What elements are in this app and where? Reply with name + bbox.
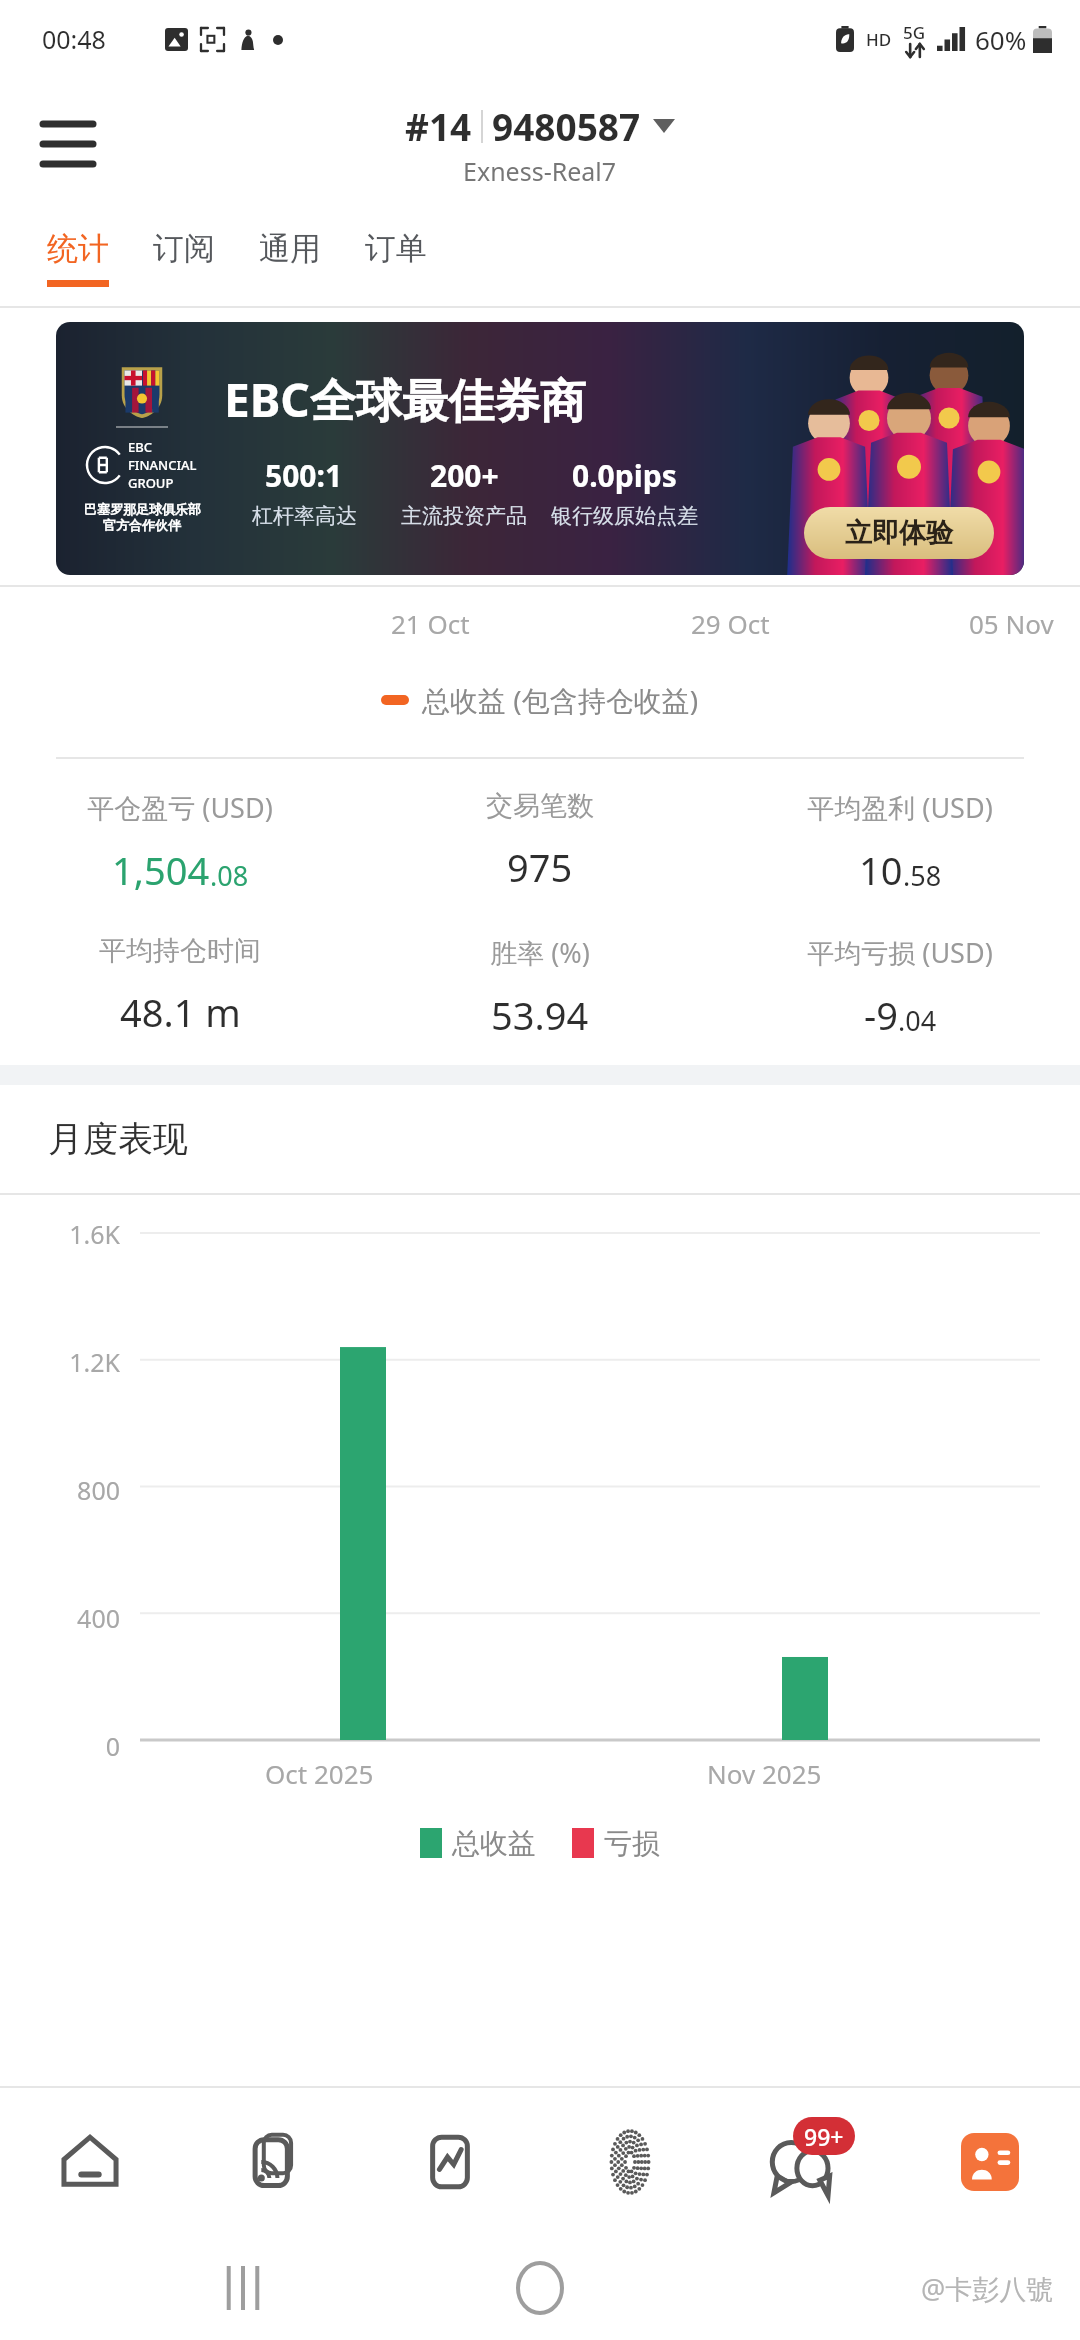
staticText: 银行级原始点差 [551, 503, 698, 529]
staticText: 通用 [259, 229, 321, 268]
staticText: 5G [903, 21, 926, 44]
staticText: #14 [405, 101, 472, 151]
staticText: .04 [898, 1002, 937, 1039]
staticText: 00:48 [42, 22, 106, 56]
button[interactable]: Home [0, 2088, 180, 2236]
button[interactable]: Messages [720, 2088, 900, 2236]
staticText: 平均持仓时间 [99, 934, 261, 968]
staticText: .08 [210, 857, 249, 894]
staticText: 48.1 m [120, 986, 241, 1038]
staticText: 10 [859, 844, 903, 896]
staticText: 1,504 [112, 844, 210, 896]
staticText: GROUP [128, 474, 174, 492]
staticText: 平均盈利 (USD) [807, 789, 993, 826]
staticText: Exness-Real7 [463, 154, 617, 188]
staticText: 400 [40, 1601, 120, 1635]
staticText: .58 [903, 857, 942, 894]
staticText: 60% [975, 22, 1027, 57]
staticText: 主流投资产品 [401, 503, 527, 529]
staticText: 800 [40, 1473, 120, 1507]
button[interactable]: 通用 [259, 229, 321, 287]
staticText: 99+ [804, 2121, 844, 2152]
button[interactable]: Charts [360, 2088, 540, 2236]
button[interactable]: 统计 [47, 229, 109, 287]
staticText: @卡彭八號 [921, 2270, 1054, 2307]
staticText: 订单 [365, 229, 427, 268]
button[interactable]: 订单 [365, 229, 427, 287]
staticText: 29 Oct [691, 606, 770, 641]
staticText: 月度表现 [48, 1117, 188, 1161]
staticText: Nov 2025 [707, 1756, 822, 1791]
button[interactable]: Trade [540, 2088, 720, 2236]
staticText: -9 [864, 989, 898, 1041]
staticText: 巴塞罗那足球俱乐部 [84, 501, 201, 517]
button[interactable]: 订阅 [153, 229, 215, 287]
staticText: 1.6K [40, 1217, 120, 1251]
staticText: 0.0pips [572, 455, 677, 496]
button[interactable]: Menu [30, 106, 106, 182]
button[interactable]: Quotes [180, 2088, 360, 2236]
staticText: 53.94 [491, 989, 589, 1041]
button[interactable]: EBC [56, 322, 1024, 575]
staticText: 平仓盈亏 (USD) [87, 789, 273, 826]
staticText: 975 [507, 841, 573, 893]
staticText: Oct 2025 [265, 1756, 374, 1791]
staticText: 订阅 [153, 229, 215, 268]
staticText: FINANCIAL [128, 456, 197, 474]
staticText: 500:1 [265, 455, 343, 496]
staticText: 立即体验 [845, 516, 953, 550]
button[interactable]: 立即体验 [804, 507, 994, 559]
button[interactable]: #14 [405, 101, 675, 188]
staticText: 200+ [430, 455, 499, 496]
staticText: 交易笔数 [486, 789, 594, 823]
staticText: 总收益 [452, 1826, 536, 1861]
staticText: HD [866, 28, 892, 51]
staticText: 05 Nov [969, 606, 1054, 641]
button[interactable]: Accounts [900, 2088, 1080, 2236]
staticText: 平均亏损 (USD) [807, 934, 993, 971]
staticText: 杠杆率高达 [252, 503, 357, 529]
staticText: EBC [128, 438, 152, 456]
staticText: 统计 [47, 229, 109, 268]
staticText: 官方合作伙伴 [103, 517, 181, 533]
staticText: 0 [40, 1729, 120, 1763]
staticText: 21 Oct [391, 606, 470, 641]
staticText: 胜率 (%) [490, 934, 590, 971]
staticText: EBC全球最佳券商 [224, 368, 586, 431]
staticText: 亏损 [604, 1826, 660, 1861]
staticText: 9480587 [492, 101, 641, 151]
staticText: 1.2K [40, 1345, 120, 1379]
staticText: 总收益 (包含持仓收益) [422, 681, 699, 719]
